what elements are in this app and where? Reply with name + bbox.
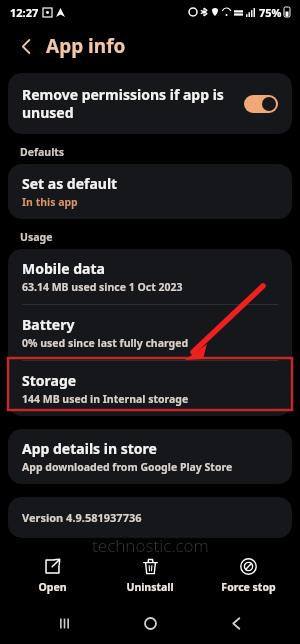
staticText: App info (46, 33, 126, 59)
button[interactable]: Back (12, 32, 40, 60)
button[interactable]: Remove permissions if app is unused (8, 73, 292, 134)
staticText: Open (38, 580, 67, 594)
staticText: 0% used since last fully charged (22, 336, 189, 350)
staticText: App downloaded from Google Play Store (22, 460, 233, 474)
staticText: 12:27 (10, 5, 39, 20)
button[interactable]: Remove permissions toggle (244, 95, 278, 113)
staticText: In this app (22, 195, 78, 209)
staticText: Defaults (20, 145, 65, 159)
staticText: App details in store (22, 439, 157, 458)
staticText: Uninstall (126, 580, 174, 594)
staticText: technostic.com (92, 534, 209, 557)
button[interactable]: Storage (8, 361, 292, 416)
button[interactable]: App details in store (8, 429, 292, 484)
staticText: Battery (22, 315, 75, 334)
button[interactable]: Set as default (8, 164, 292, 219)
button[interactable]: Force stop (202, 554, 294, 598)
staticText: Version 4.9.581937736 (22, 510, 142, 525)
button[interactable]: Uninstall (104, 554, 196, 598)
button[interactable]: Recent apps (42, 602, 86, 644)
staticText: 63.14 MB used since 1 Oct 2023 (22, 280, 183, 294)
button[interactable]: Back (214, 602, 258, 644)
staticText: 75% (259, 5, 282, 20)
staticText: Storage (22, 371, 77, 390)
button[interactable]: Battery (8, 305, 292, 360)
staticText: Usage (20, 230, 53, 244)
staticText: Set as default (22, 174, 118, 193)
button[interactable]: Mobile data (8, 249, 292, 304)
staticText: Mobile data (22, 259, 105, 278)
staticText: Remove permissions if app is unused (22, 85, 234, 122)
staticText: 144 MB used in Internal storage (22, 392, 189, 406)
button[interactable]: Open (6, 554, 98, 598)
button[interactable]: Version 4.9.581937736 (8, 497, 292, 538)
button[interactable]: Home (128, 602, 172, 644)
staticText: Force stop (221, 580, 276, 594)
